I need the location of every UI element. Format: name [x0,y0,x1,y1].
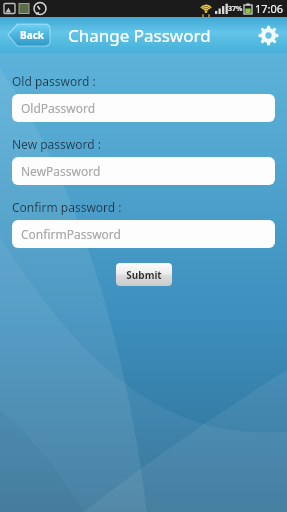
staticText: New password : [12,136,101,152]
staticText: Old password : [12,73,96,89]
button[interactable]: Settings [255,22,281,48]
staticText: OldPassword [21,100,96,116]
button[interactable]: NewPassword [12,157,275,185]
staticText: Submit [126,268,162,282]
staticText: ConfirmPassword [21,226,121,242]
button[interactable]: Back [8,24,50,46]
staticText: Back [20,28,44,42]
button[interactable]: Submit [116,263,172,286]
staticText: 37% [228,4,243,14]
button[interactable]: OldPassword [12,94,275,122]
staticText: Change Password [68,24,211,47]
staticText: Confirm password : [12,199,122,215]
staticText: NewPassword [21,163,101,179]
button[interactable]: ConfirmPassword [12,220,275,248]
staticText: 17:06 [255,1,284,16]
